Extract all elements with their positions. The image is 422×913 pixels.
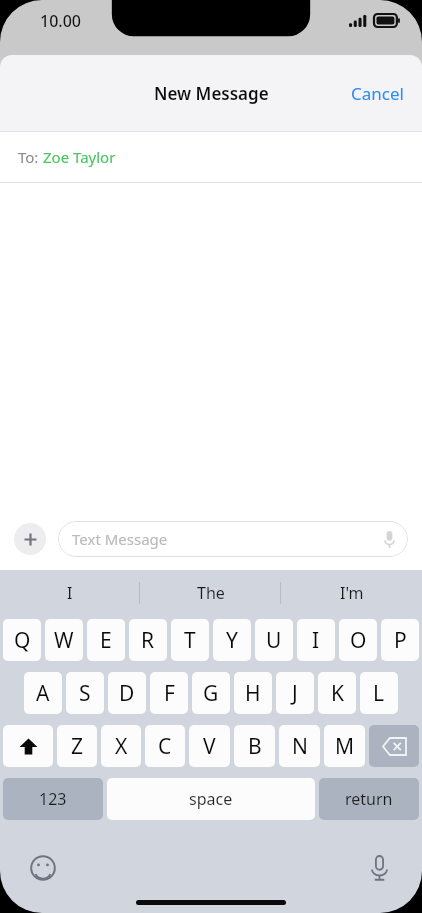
staticText: space — [189, 788, 233, 810]
staticText: Text Message — [72, 529, 168, 549]
button[interactable]: K — [318, 672, 356, 714]
staticText: I'm — [340, 582, 364, 604]
staticText: M — [335, 732, 355, 761]
button[interactable]: space — [107, 778, 315, 820]
staticText: I — [67, 582, 73, 604]
button[interactable]: L — [360, 672, 398, 714]
staticText: T — [184, 626, 196, 655]
staticText: New Message — [154, 82, 269, 105]
staticText: J — [292, 679, 298, 708]
staticText: Cancel — [351, 82, 404, 105]
button[interactable]: I — [0, 570, 140, 616]
staticText: V — [203, 732, 216, 761]
staticText: N — [292, 732, 308, 761]
button[interactable]: Text Message — [58, 521, 408, 557]
staticText: A — [36, 679, 50, 708]
staticText: F — [164, 679, 175, 708]
button[interactable]: S — [66, 672, 104, 714]
button[interactable]: Backspace — [369, 725, 419, 767]
staticText: R — [141, 626, 155, 655]
button[interactable]: Y — [213, 619, 251, 661]
button[interactable]: To: — [0, 132, 422, 182]
button[interactable]: I'm — [281, 570, 422, 616]
staticText: I — [312, 626, 320, 655]
staticText: O — [350, 626, 367, 655]
button[interactable]: M — [324, 725, 365, 767]
staticText: H — [245, 679, 261, 708]
staticText: B — [248, 732, 262, 761]
button[interactable]: I — [297, 619, 335, 661]
button[interactable]: W — [45, 619, 83, 661]
staticText: D — [119, 679, 135, 708]
staticText: S — [79, 679, 91, 708]
staticText: Z — [71, 732, 84, 761]
staticText: Y — [226, 626, 238, 655]
button[interactable]: N — [279, 725, 320, 767]
staticText: Zoe Taylor — [43, 147, 116, 167]
button[interactable]: 123 — [3, 778, 103, 820]
button[interactable]: The — [140, 570, 281, 616]
staticText: E — [100, 626, 112, 655]
button[interactable]: T — [171, 619, 209, 661]
staticText: 123 — [39, 788, 67, 810]
button[interactable]: G — [192, 672, 230, 714]
staticText: G — [203, 679, 219, 708]
button[interactable]: D — [108, 672, 146, 714]
button[interactable]: H — [234, 672, 272, 714]
button[interactable]: J — [276, 672, 314, 714]
staticText: return — [345, 788, 393, 810]
staticText: 10.00 — [40, 10, 81, 32]
button[interactable]: A — [24, 672, 62, 714]
button[interactable]: Dictation — [360, 849, 398, 887]
button[interactable]: F — [150, 672, 188, 714]
staticText: Q — [14, 626, 31, 655]
staticText: To: — [18, 147, 43, 167]
button[interactable]: Emoji — [24, 849, 62, 887]
staticText: X — [115, 732, 128, 761]
staticText: The — [197, 582, 225, 604]
staticText: L — [373, 679, 385, 708]
button[interactable]: U — [255, 619, 293, 661]
button[interactable]: R — [129, 619, 167, 661]
staticText: W — [54, 626, 74, 655]
button[interactable]: Cancel — [333, 70, 422, 117]
staticText: P — [394, 626, 407, 655]
staticText: C — [158, 732, 172, 761]
button[interactable]: X — [101, 725, 141, 767]
staticText: K — [331, 679, 344, 708]
button[interactable]: E — [87, 619, 125, 661]
button[interactable]: return — [319, 778, 419, 820]
button[interactable]: Shift — [3, 725, 53, 767]
button[interactable]: C — [145, 725, 185, 767]
button[interactable]: Add attachment — [14, 523, 46, 555]
button[interactable]: P — [381, 619, 419, 661]
button[interactable]: Q — [3, 619, 41, 661]
button[interactable]: Z — [57, 725, 97, 767]
button[interactable]: B — [234, 725, 275, 767]
staticText: U — [266, 626, 282, 655]
button[interactable]: V — [189, 725, 230, 767]
button[interactable]: O — [339, 619, 377, 661]
